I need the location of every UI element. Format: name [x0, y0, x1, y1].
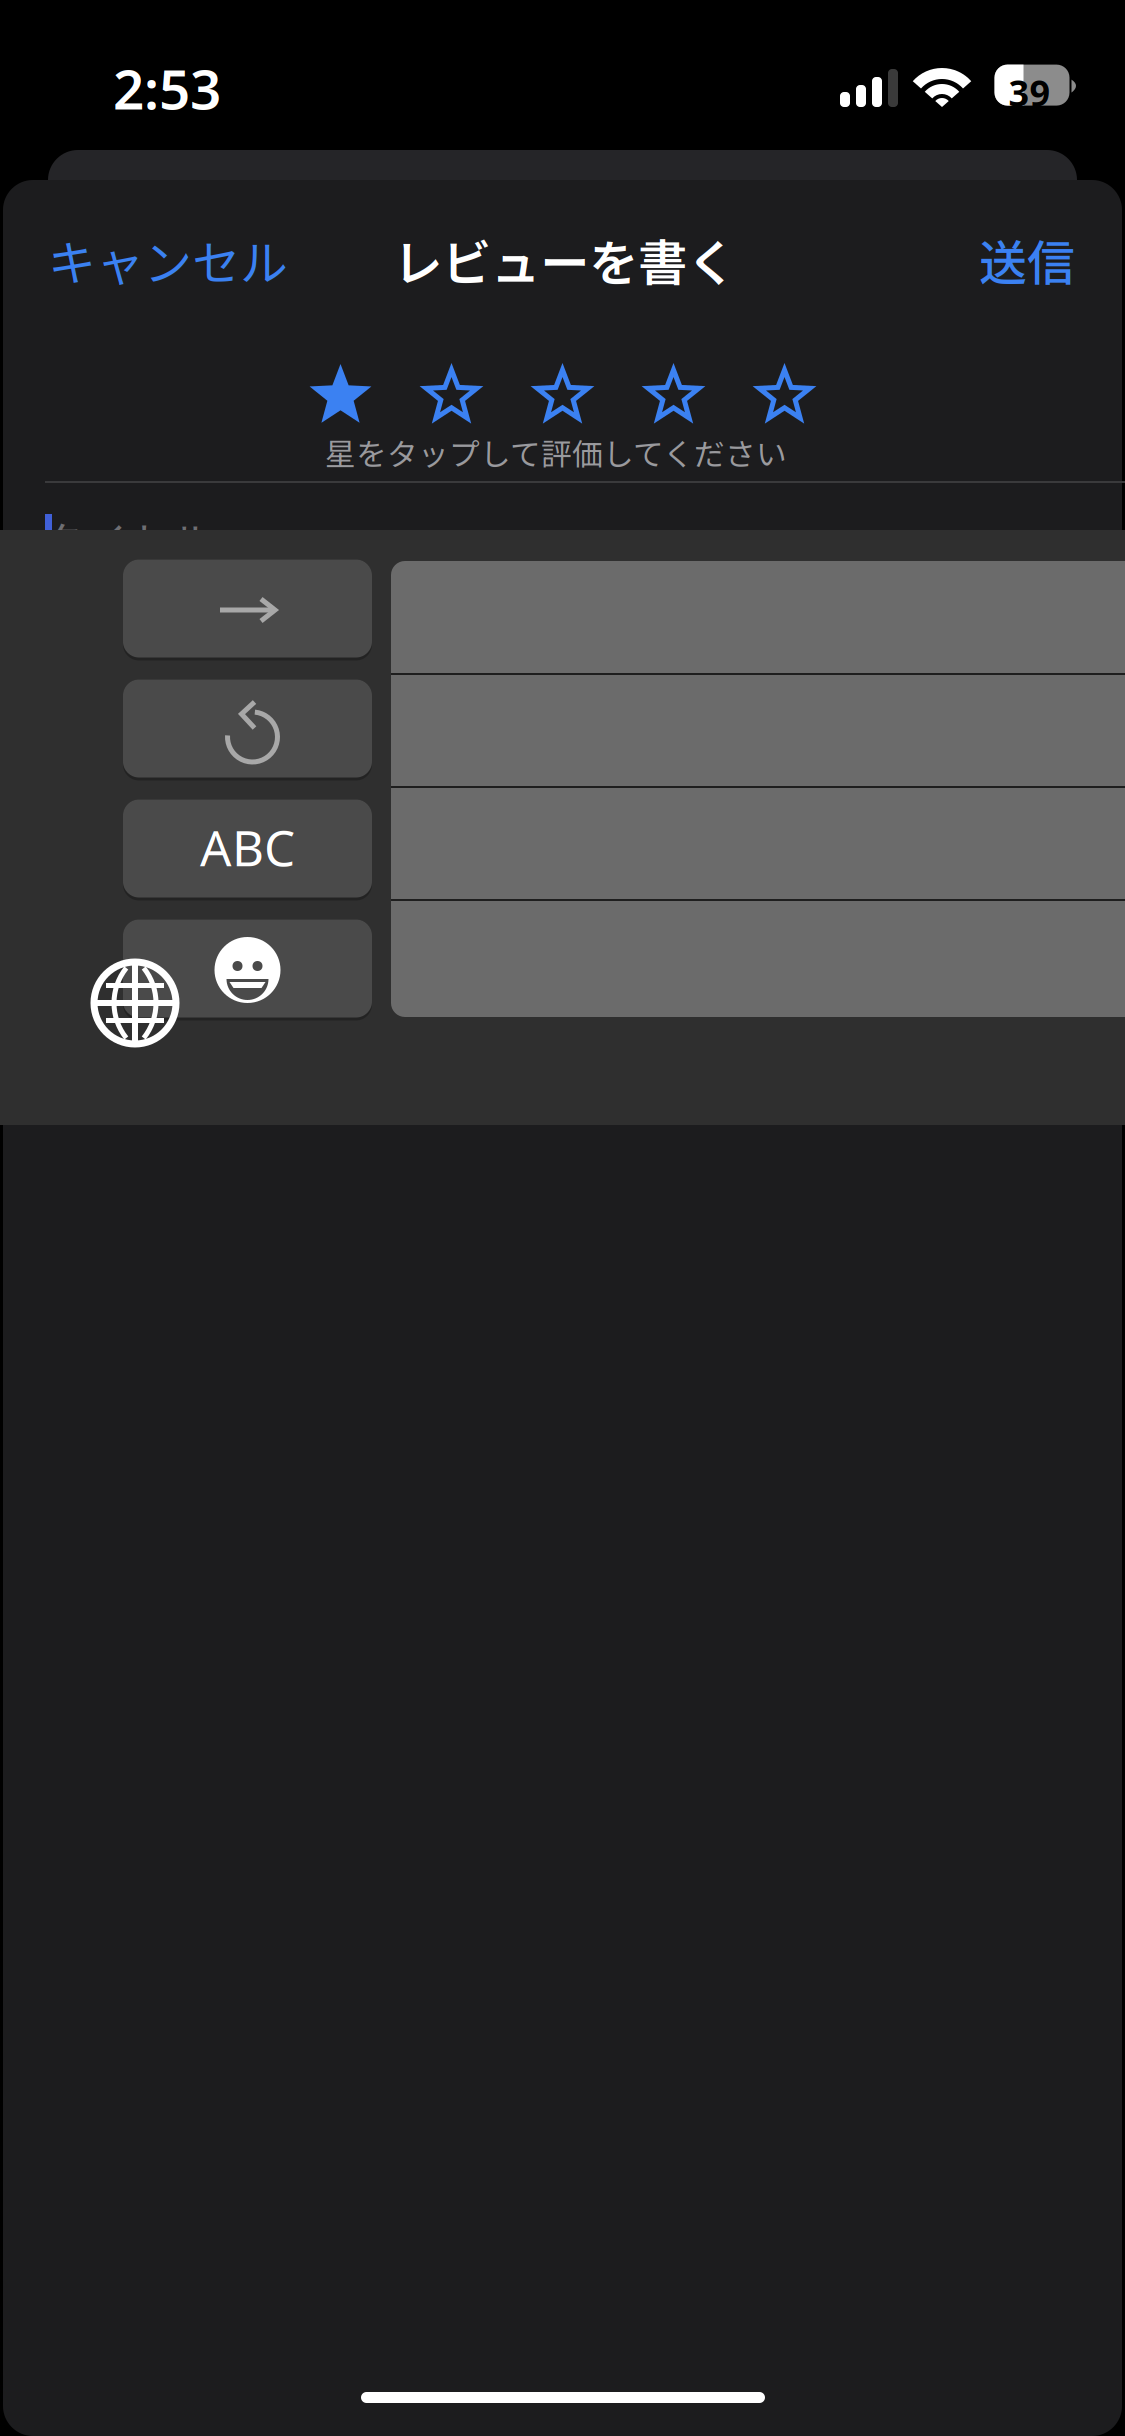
- button[interactable]: キャンセル: [38, 215, 298, 304]
- staticText: 2:53: [113, 52, 221, 125]
- button[interactable]: Switch keyboard: [94, 962, 176, 1044]
- staticText: タイトル: [42, 509, 214, 571]
- staticText: ABC: [200, 814, 295, 880]
- button[interactable]: Undo: [123, 681, 372, 779]
- staticText: 送信: [979, 225, 1075, 294]
- button[interactable]: Next: [123, 561, 372, 659]
- button[interactable]: 5 stars: [752, 364, 817, 429]
- staticText: キャンセル: [48, 225, 288, 294]
- button[interactable]: 4 stars: [641, 364, 706, 429]
- button[interactable]: ABC: [123, 801, 372, 899]
- staticText: 星をタップして評価してください: [325, 430, 787, 474]
- button[interactable]: Emoji: [123, 921, 372, 1019]
- staticText: レビューを書く: [393, 224, 736, 295]
- button[interactable]: 1 star: [308, 364, 373, 429]
- staticText: 39: [1008, 69, 1050, 116]
- button[interactable]: 2 stars: [419, 364, 484, 429]
- button[interactable]: 送信: [969, 215, 1085, 304]
- button[interactable]: 3 stars: [530, 364, 595, 429]
